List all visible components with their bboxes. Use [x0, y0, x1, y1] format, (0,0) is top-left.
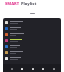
button[interactable] [3, 49, 61, 55]
button[interactable]: Library [30, 66, 35, 71]
button[interactable] [3, 25, 61, 31]
button[interactable] [3, 31, 61, 37]
button[interactable] [3, 19, 61, 25]
staticText: Playlist [21, 1, 37, 6]
button[interactable]: Home [9, 66, 14, 71]
staticText: SMART [5, 1, 20, 6]
button[interactable]: Radio [40, 66, 45, 71]
button[interactable] [3, 43, 61, 49]
button[interactable]: Search [19, 66, 24, 71]
button[interactable]: Profile [51, 66, 56, 71]
button[interactable] [3, 37, 61, 43]
button[interactable] [3, 55, 61, 61]
